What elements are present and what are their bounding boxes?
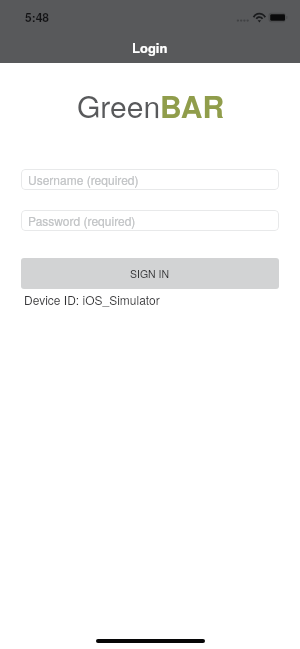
staticText: Device ID: iOS_Simulator xyxy=(24,291,160,308)
button[interactable]: Password (required) xyxy=(21,210,279,231)
staticText: Login xyxy=(132,38,168,57)
other: Status: signal, wifi, battery xyxy=(236,12,288,23)
staticText: 5:48 xyxy=(25,8,50,25)
staticText: GreenBAR xyxy=(77,84,225,128)
staticText: SIGN IN xyxy=(130,266,170,281)
staticText: Password (required) xyxy=(28,212,136,229)
staticText: Username (required) xyxy=(28,171,139,188)
button[interactable]: SIGN IN xyxy=(21,258,279,289)
button[interactable]: Username (required) xyxy=(21,169,279,190)
